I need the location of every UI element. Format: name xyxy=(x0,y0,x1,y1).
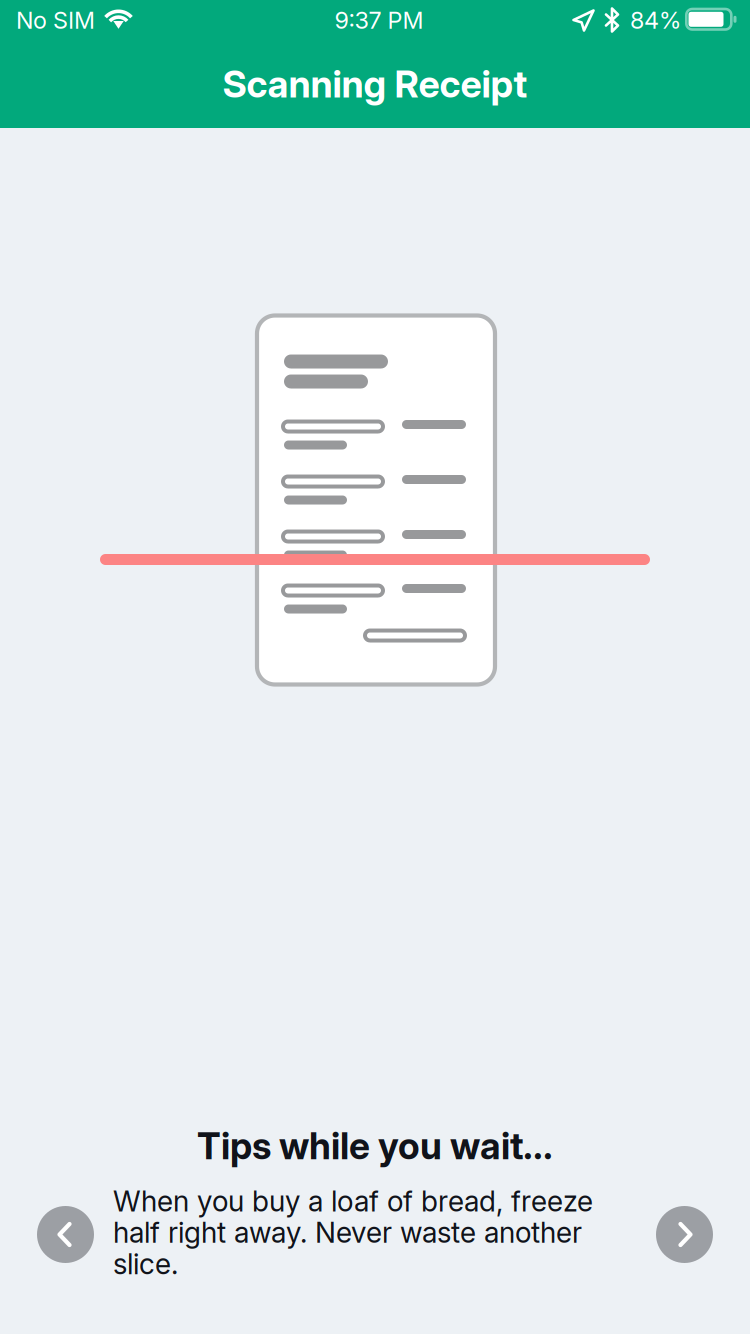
staticText: When you buy a loaf of bread, freeze hal… xyxy=(113,1184,593,1281)
button[interactable]: Previous tip xyxy=(37,1206,94,1263)
button[interactable]: Next tip xyxy=(656,1206,713,1263)
staticText: 84% xyxy=(630,6,681,34)
staticText: Scanning Receipt xyxy=(222,61,527,107)
staticText: Tips while you wait... xyxy=(197,1124,553,1168)
staticText: 9:37 PM xyxy=(334,6,423,34)
staticText: No SIM xyxy=(16,6,95,34)
